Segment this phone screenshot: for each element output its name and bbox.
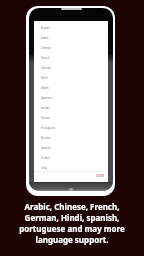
button[interactable]: Spanish: [34, 143, 108, 153]
button[interactable]: Russian: [34, 133, 108, 143]
staticText: Japanese: [41, 96, 52, 100]
staticText: Italian: [41, 86, 49, 90]
button[interactable]: English: [34, 23, 108, 33]
button[interactable]: Chinese: [34, 43, 108, 53]
staticText: Spanish: [41, 146, 51, 150]
button[interactable]: German: [34, 63, 108, 73]
button[interactable]: DONE: [93, 172, 108, 180]
button[interactable]: Italian: [34, 83, 108, 93]
button[interactable]: Hindi: [34, 73, 108, 83]
staticText: Urdu: [41, 166, 48, 170]
staticText: Hindi: [41, 76, 48, 80]
staticText: Persian: [41, 116, 51, 120]
button[interactable]: Arabic: [34, 33, 108, 43]
button[interactable]: Urdu: [34, 163, 108, 173]
button[interactable]: Turkish: [34, 153, 108, 163]
button[interactable]: Home: [69, 188, 73, 191]
staticText: Turkish: [41, 156, 50, 160]
staticText: Russian: [41, 136, 51, 140]
button[interactable]: French: [34, 53, 108, 63]
button[interactable]: Persian: [34, 113, 108, 123]
button[interactable]: Korean: [34, 103, 108, 113]
staticText: Korean: [41, 106, 50, 110]
staticText: Arabic: [41, 36, 49, 40]
staticText: English: [41, 26, 50, 30]
staticText: Arabic, Chinese, French, German, Hindi, …: [19, 201, 125, 245]
staticText: French: [41, 56, 50, 60]
button[interactable]: Japanese: [34, 93, 108, 103]
staticText: DONE: [96, 174, 105, 178]
button[interactable]: Portuguese: [34, 123, 108, 133]
staticText: German: [41, 66, 51, 70]
staticText: Chinese: [41, 46, 51, 50]
staticText: Portuguese: [41, 126, 56, 130]
